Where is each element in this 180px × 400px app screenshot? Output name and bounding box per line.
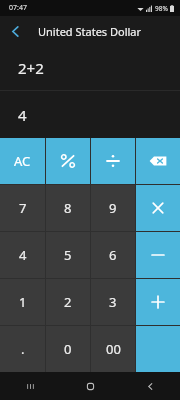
button[interactable]: 5 <box>46 232 90 278</box>
staticText: 7 <box>19 199 27 217</box>
staticText: 4 <box>18 105 27 125</box>
button[interactable]: AC <box>0 138 45 184</box>
staticText: . <box>21 340 25 358</box>
button[interactable]: 9 <box>91 185 135 231</box>
button[interactable]: . <box>0 326 45 372</box>
button[interactable]: Backspace <box>136 138 180 184</box>
button[interactable]: 6 <box>91 232 135 278</box>
button[interactable]: 7 <box>0 185 45 231</box>
staticText: 2 <box>64 293 72 311</box>
button[interactable]: 0 <box>46 326 90 372</box>
staticText: 5 <box>64 246 72 264</box>
button[interactable]: 4 <box>0 232 45 278</box>
staticText: 1 <box>19 293 27 311</box>
button[interactable]: Back <box>0 16 30 46</box>
staticText: 2+2 <box>18 58 44 78</box>
staticText: 4 <box>19 246 27 264</box>
button[interactable]: Home <box>60 372 120 400</box>
button[interactable]: Minus <box>136 232 180 278</box>
button[interactable]: Divide <box>91 138 135 184</box>
staticText: 6 <box>109 246 117 264</box>
button[interactable]: Multiply <box>136 185 180 231</box>
button[interactable]: Percent <box>46 138 90 184</box>
staticText: AC <box>14 152 31 170</box>
staticText: 98% <box>155 4 168 13</box>
staticText: 3 <box>109 293 117 311</box>
button[interactable]: Recents <box>0 372 60 400</box>
button[interactable]: 1 <box>0 279 45 325</box>
staticText: 9 <box>109 199 117 217</box>
staticText: 8 <box>64 199 72 217</box>
staticText: 07:47 <box>9 3 27 13</box>
button[interactable]: 8 <box>46 185 90 231</box>
staticText: 00 <box>106 340 121 358</box>
button[interactable]: Plus <box>136 279 180 325</box>
button[interactable]: 3 <box>91 279 135 325</box>
button[interactable]: 00 <box>91 326 135 372</box>
button[interactable]: 2 <box>46 279 90 325</box>
staticText: United States Dollar <box>38 24 142 39</box>
button[interactable]: Back <box>120 372 180 400</box>
staticText: 0 <box>64 340 72 358</box>
